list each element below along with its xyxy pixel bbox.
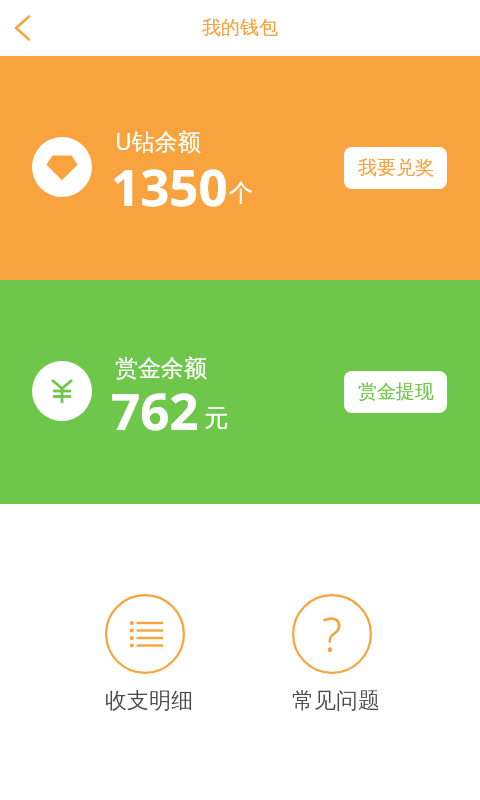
staticText: 1350 [111,151,228,220]
staticText: 常见问题 [292,687,380,715]
button[interactable]: 赏金提现 [344,371,447,413]
button[interactable]: ? [257,594,407,715]
staticText: 赏金提现 [358,380,434,404]
staticText: 元 [204,403,228,433]
button[interactable]: 收支明细 [70,594,220,715]
staticText: 我的钱包 [202,16,278,40]
button[interactable]: 我要兑奖 [344,147,447,189]
staticText: 762 [111,375,199,444]
staticText: U钻余额 [115,125,201,156]
button[interactable] [0,6,44,50]
staticText: ? [322,602,342,666]
staticText: 个 [229,178,253,208]
staticText: 赏金余额 [115,354,207,383]
staticText: 收支明细 [105,687,193,715]
staticText: 我要兑奖 [358,156,434,180]
